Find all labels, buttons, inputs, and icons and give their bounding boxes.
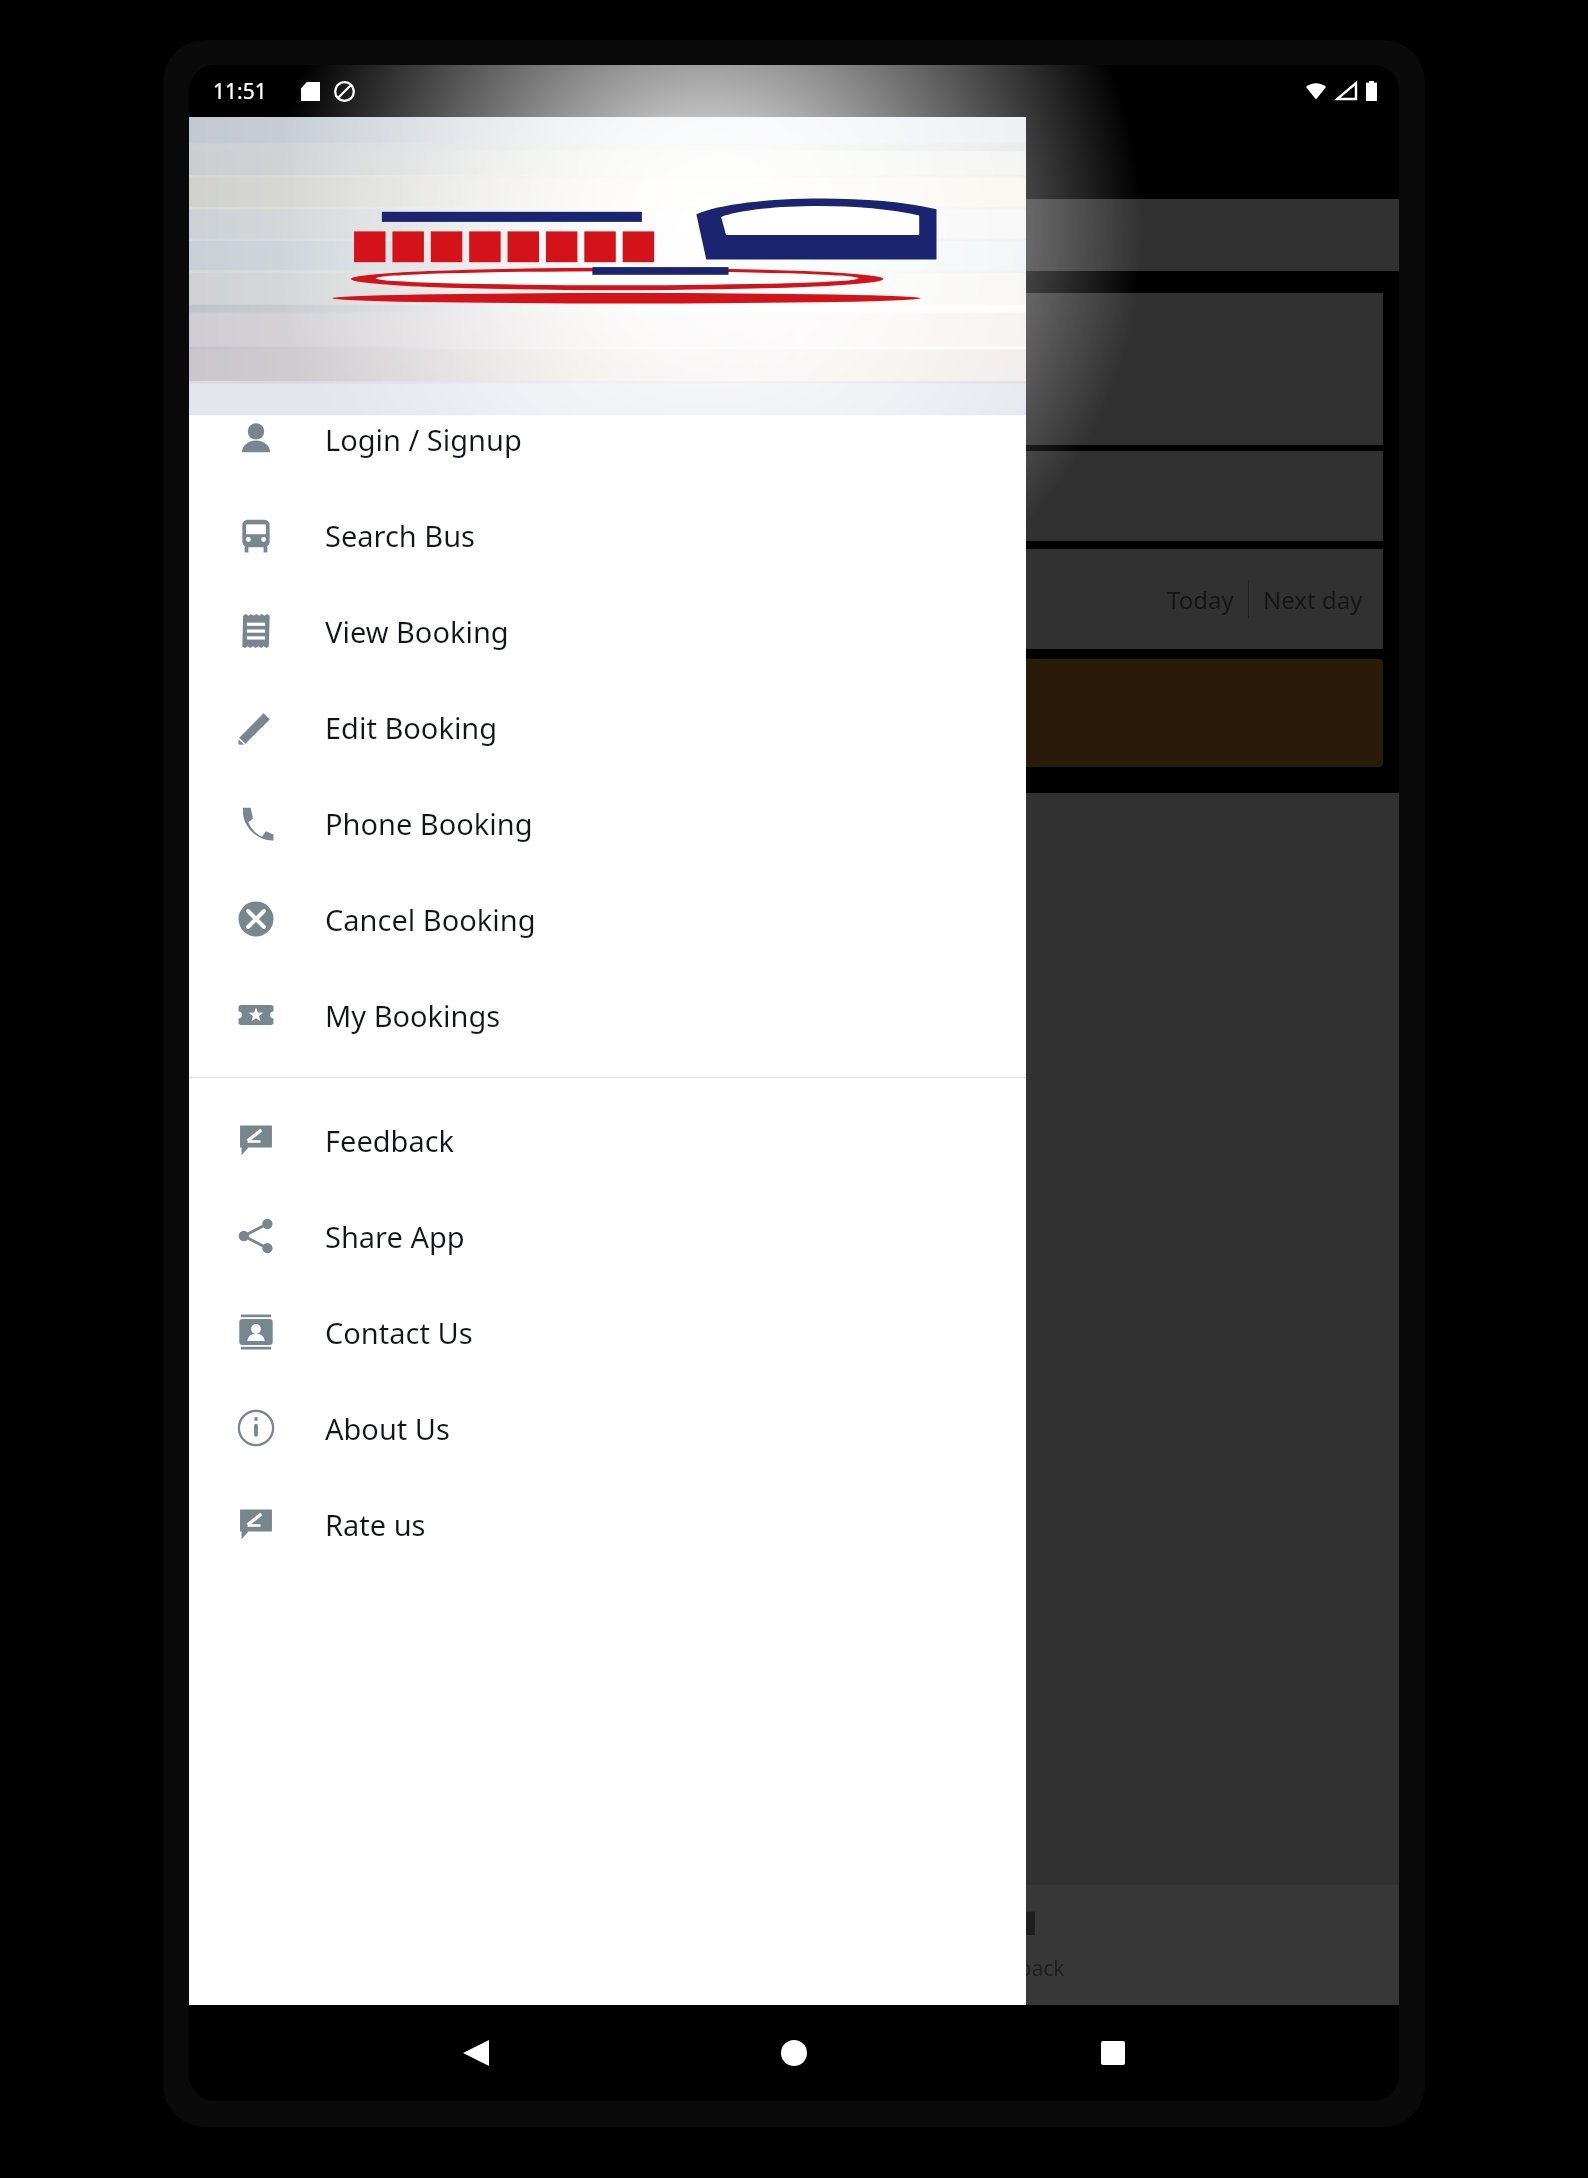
staticText: Cancel Booking — [325, 900, 536, 939]
button[interactable]: Search Bus — [189, 487, 1026, 583]
staticText: Today — [1167, 583, 1234, 616]
button[interactable]: Recents — [1081, 2021, 1145, 2085]
button[interactable]: About Us — [189, 1380, 1026, 1476]
button[interactable]: Feedback — [189, 1092, 1026, 1188]
staticText: Feedback — [325, 1121, 455, 1160]
button[interactable]: Login / Signup — [189, 391, 1026, 487]
button[interactable]: My Bookings — [189, 967, 1026, 1063]
button[interactable]: Phone Booking — [189, 775, 1026, 871]
button[interactable]: Home — [762, 2021, 826, 2085]
button[interactable]: SEARCH BUSES — [205, 659, 1383, 767]
staticText: View Booking — [325, 612, 509, 651]
button[interactable]: Rate us — [189, 1476, 1026, 1572]
staticText: Feedback — [971, 1954, 1065, 1983]
button[interactable]: View Booking — [189, 583, 1026, 679]
staticText: Rate us — [325, 1505, 426, 1544]
staticText: Booking — [328, 220, 418, 251]
staticText: Search Bus — [325, 516, 475, 555]
button[interactable]: Feedback — [937, 1901, 1099, 1989]
staticText: Phone Booking — [325, 804, 533, 843]
staticText: Edit Booking — [325, 708, 498, 747]
button[interactable]: Back — [444, 2021, 508, 2085]
button[interactable]: Cancel Booking — [189, 871, 1026, 967]
staticText: My Bookings — [325, 996, 501, 1035]
staticText: Contact Us — [325, 1313, 473, 1352]
button[interactable]: Contact Us — [189, 1284, 1026, 1380]
button[interactable]: Edit Booking — [189, 679, 1026, 775]
button[interactable]: Share App — [189, 1188, 1026, 1284]
staticText: Next day — [1263, 583, 1363, 616]
staticText: Login / Signup — [325, 420, 522, 459]
staticText: 11:51 — [213, 77, 267, 106]
staticText: About Us — [325, 1409, 450, 1448]
staticText: Share App — [325, 1217, 465, 1256]
